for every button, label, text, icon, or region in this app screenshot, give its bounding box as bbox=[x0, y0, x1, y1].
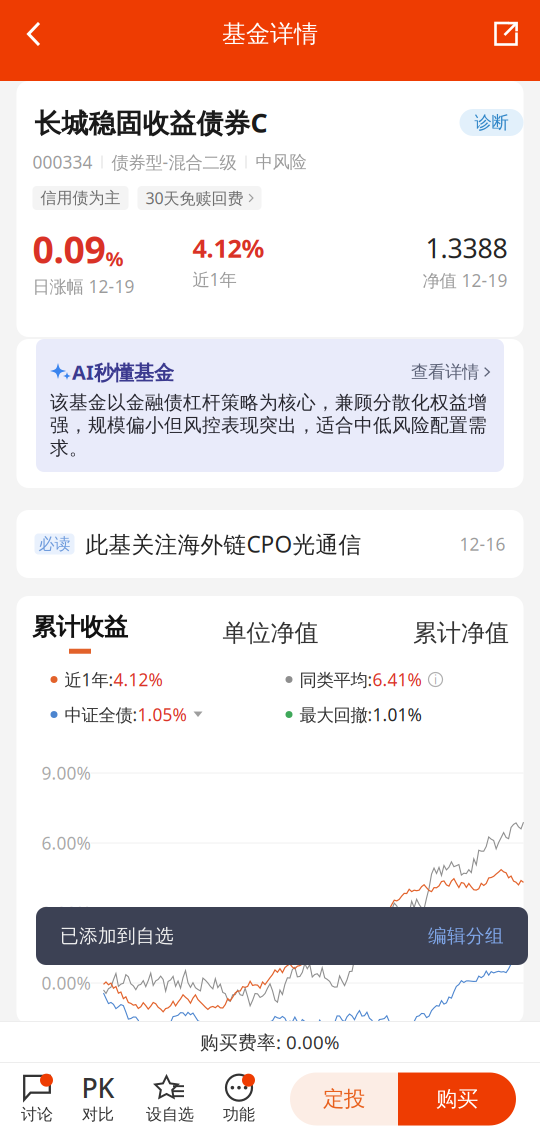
staticText: 讨论 bbox=[21, 1105, 53, 1124]
staticText: 近1年 bbox=[192, 268, 236, 291]
staticText: 中风险 bbox=[255, 151, 306, 173]
staticText: 4.12% bbox=[113, 668, 162, 691]
staticText: 0.00% bbox=[41, 971, 90, 994]
button[interactable]: 诊断 bbox=[459, 109, 523, 136]
button[interactable]: 编辑分组 bbox=[428, 924, 504, 947]
staticText: 中证全债: bbox=[64, 703, 137, 726]
staticText: 购买费率: 0.00% bbox=[200, 1030, 340, 1054]
button[interactable]: 分享 bbox=[472, 6, 540, 62]
button[interactable]: 查看详情 bbox=[411, 361, 490, 383]
staticText: 诊断 bbox=[474, 112, 508, 133]
button[interactable]: PK bbox=[74, 1071, 122, 1126]
staticText: 此基关注海外链CPO光通信 bbox=[85, 529, 361, 559]
staticText: 对比 bbox=[82, 1105, 114, 1124]
staticText: i bbox=[434, 671, 437, 687]
staticText: 日涨幅 12-19 bbox=[32, 275, 134, 298]
staticText: 已添加到自选 bbox=[60, 924, 174, 947]
staticText: 6.41% bbox=[372, 668, 421, 691]
button[interactable]: 购买 bbox=[398, 1072, 516, 1125]
button[interactable]: 累计收益 bbox=[25, 610, 135, 656]
staticText: 0.09 bbox=[32, 224, 105, 274]
staticText: 购买 bbox=[436, 1086, 478, 1112]
button[interactable]: 单位净值 bbox=[215, 610, 325, 656]
staticText: 同类平均: bbox=[299, 668, 372, 691]
staticText: 设自选 bbox=[146, 1105, 194, 1124]
staticText: 1.3388 bbox=[425, 230, 507, 266]
staticText: AI秒懂基金 bbox=[72, 359, 174, 385]
button[interactable]: 设自选 bbox=[122, 1071, 218, 1126]
staticText: 编辑分组 bbox=[428, 924, 504, 947]
staticText: 累计收益 bbox=[32, 612, 128, 642]
staticText: 该基金以金融债杠杆策略为核心，兼顾分散化权益增强，规模偏小但风控表现突出，适合中… bbox=[50, 391, 487, 460]
button[interactable]: 讨论 bbox=[0, 1071, 74, 1126]
staticText: 3.00% bbox=[41, 901, 90, 924]
button[interactable]: 返回 bbox=[0, 6, 68, 62]
button[interactable]: 功能 bbox=[218, 1071, 260, 1126]
staticText: 债券型-混合二级 bbox=[111, 150, 236, 173]
staticText: 累计净值 bbox=[413, 618, 509, 648]
staticText: 12-16 bbox=[459, 532, 505, 555]
staticText: 功能 bbox=[223, 1105, 255, 1124]
staticText: 000334 bbox=[32, 150, 92, 173]
staticText: 4.12% bbox=[192, 231, 264, 265]
staticText: 9.00% bbox=[41, 761, 90, 784]
staticText: 基金详情 bbox=[222, 19, 318, 49]
staticText: 净值 12-19 bbox=[422, 269, 507, 292]
staticText: 信用债为主 bbox=[40, 188, 120, 208]
staticText: 1.01% bbox=[372, 703, 421, 726]
staticText: PK bbox=[81, 1070, 114, 1105]
staticText: 近1年: bbox=[64, 668, 113, 691]
staticText: 查看详情 bbox=[411, 361, 479, 383]
button[interactable]: 累计净值 bbox=[406, 610, 516, 656]
staticText: % bbox=[105, 245, 123, 272]
staticText: 最大回撤: bbox=[299, 703, 372, 726]
staticText: 1.05% bbox=[137, 703, 186, 726]
staticText: 长城稳固收益债券C bbox=[34, 105, 267, 140]
staticText: 30天免赎回费 bbox=[145, 187, 243, 209]
button[interactable]: 必读 bbox=[16, 510, 523, 578]
staticText: 单位净值 bbox=[222, 618, 318, 648]
staticText: 定投 bbox=[323, 1086, 365, 1112]
staticText: 6.00% bbox=[41, 831, 90, 854]
button[interactable]: 定投 bbox=[290, 1072, 398, 1125]
staticText: 必读 bbox=[38, 534, 70, 554]
button[interactable]: 30天免赎回费 bbox=[137, 186, 261, 210]
